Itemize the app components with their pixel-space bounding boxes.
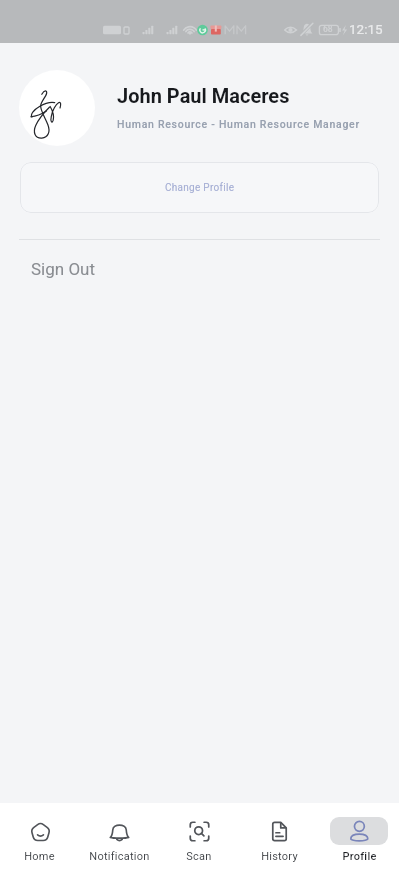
button[interactable]: Notification xyxy=(79,803,159,863)
button[interactable]: Profile xyxy=(319,803,399,863)
staticText: 12:15 xyxy=(349,21,383,37)
staticText: Change Profile xyxy=(165,182,235,194)
staticText: 68 xyxy=(323,24,333,34)
staticText: Notification xyxy=(89,850,150,863)
staticText: Human Resource - Human Resource Manager xyxy=(117,118,360,130)
staticText: Home xyxy=(24,850,55,863)
staticText: Sign Out xyxy=(31,259,96,279)
button[interactable]: Sign Out xyxy=(0,254,399,284)
staticText: Profile xyxy=(342,850,377,863)
staticText: History xyxy=(261,850,298,863)
button[interactable]: Home xyxy=(0,803,79,863)
button[interactable]: Change Profile xyxy=(20,162,379,213)
button[interactable]: Scan xyxy=(159,803,239,863)
staticText: Scan xyxy=(186,850,212,863)
staticText: John Paul Maceres xyxy=(117,84,290,107)
button[interactable]: History xyxy=(239,803,319,863)
